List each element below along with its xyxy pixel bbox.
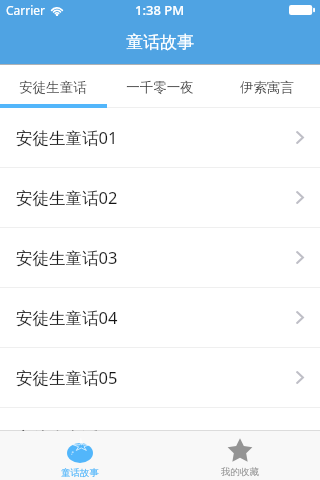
button[interactable]: 安徒生童话 [0,65,106,108]
button[interactable]: 伊索寓言 [213,65,320,108]
button[interactable]: 安徒生童话02 [0,167,320,227]
staticText: 安徒生童话06 [16,426,118,431]
button[interactable]: 安徒生童话05 [0,347,320,407]
button[interactable]: 童话故事 [0,431,160,480]
button[interactable]: 安徒生童话04 [0,287,320,347]
button[interactable]: 安徒生童话03 [0,227,320,287]
staticText: 安徒生童话01 [16,126,118,149]
staticText: 安徒生童话05 [16,366,118,389]
staticText: 1:38 PM [135,1,185,19]
button[interactable]: 安徒生童话06 [0,407,320,431]
staticText: Carrier [6,2,46,18]
staticText: 一千零一夜 [126,79,194,96]
other: Open [296,131,304,144]
other: Open [296,251,304,264]
staticText: 安徒生童话02 [16,186,118,209]
other: Open [296,371,304,384]
staticText: 安徒生童话 [19,79,87,96]
staticText: 我的收藏 [221,466,259,478]
staticText: 安徒生童话03 [16,246,118,269]
staticText: 安徒生童话04 [16,306,118,329]
button[interactable]: 一千零一夜 [106,65,213,108]
staticText: 童话故事 [61,467,99,479]
staticText: 童话故事 [126,32,194,53]
button[interactable]: 安徒生童话01 [0,107,320,167]
staticText: 伊索寓言 [240,79,294,96]
other: Open [296,311,304,324]
button[interactable]: 我的收藏 [160,431,320,480]
other: Open [296,191,304,204]
